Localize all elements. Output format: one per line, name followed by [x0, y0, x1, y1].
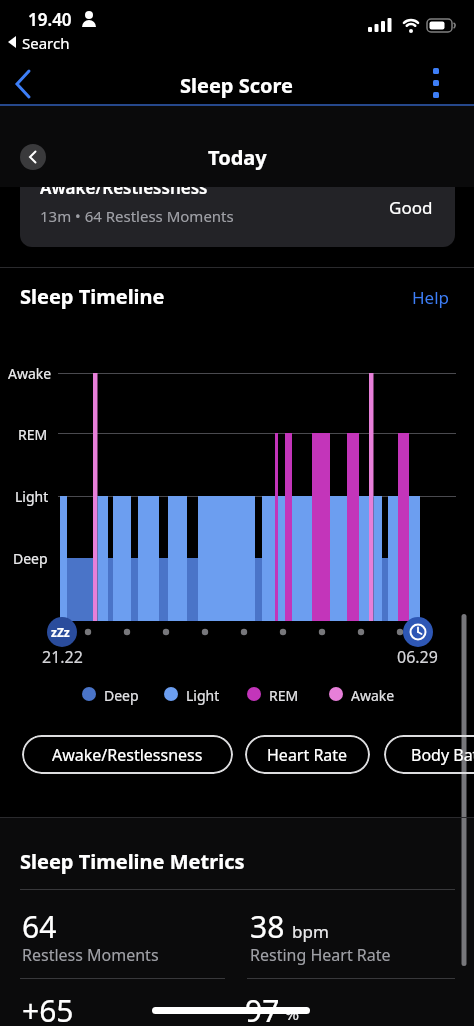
- staticText: REM: [269, 686, 299, 705]
- button[interactable]: Help: [412, 286, 458, 310]
- button[interactable]: [8, 62, 48, 106]
- staticText: bpm: [292, 920, 329, 943]
- button[interactable]: [20, 168, 455, 247]
- button[interactable]: Awake/Restlessness: [22, 735, 233, 774]
- staticText: Resting Heart Rate: [250, 944, 391, 966]
- button[interactable]: [20, 144, 46, 170]
- staticText: Light: [186, 686, 220, 705]
- staticText: Deep: [104, 686, 139, 705]
- staticText: Awake: [8, 364, 52, 383]
- staticText: Heart Rate: [267, 744, 348, 766]
- button[interactable]: Body Battery: [384, 735, 474, 774]
- staticText: 06.29: [397, 646, 438, 668]
- staticText: Search: [22, 33, 70, 53]
- staticText: Sleep Timeline Metrics: [20, 848, 245, 875]
- staticText: Awake: [351, 686, 395, 705]
- staticText: Awake/Restlessness: [40, 176, 208, 199]
- staticText: Body Battery: [411, 744, 474, 766]
- staticText: Deep: [13, 549, 48, 568]
- staticText: 38: [250, 906, 285, 947]
- staticText: Restless Moments: [22, 944, 159, 966]
- staticText: Sleep Timeline: [20, 283, 165, 310]
- button[interactable]: [420, 60, 454, 104]
- staticText: 13m • 64 Restless Moments: [40, 206, 234, 226]
- button[interactable]: Heart Rate: [245, 735, 370, 774]
- staticText: Help: [412, 286, 450, 309]
- staticText: Awake/Restlessness: [52, 744, 203, 766]
- staticText: REM: [18, 425, 48, 444]
- staticText: 21.22: [42, 646, 83, 668]
- staticText: zZz: [51, 624, 70, 640]
- staticText: 64: [22, 906, 57, 947]
- staticText: 97: [245, 990, 280, 1026]
- staticText: %: [285, 1002, 300, 1025]
- staticText: 19.40: [28, 8, 72, 31]
- staticText: Sleep Score: [180, 72, 294, 99]
- staticText: Good: [389, 196, 433, 219]
- staticText: Today: [208, 144, 267, 171]
- staticText: +65: [22, 990, 74, 1026]
- staticText: Light: [15, 487, 49, 506]
